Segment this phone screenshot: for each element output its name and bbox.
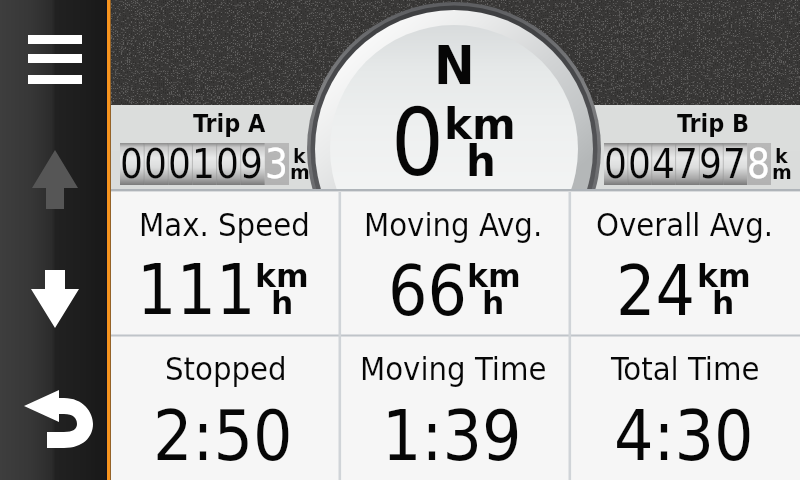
staticText: Moving Time	[360, 350, 547, 388]
staticText: Total Time	[611, 350, 760, 388]
staticText: 7	[723, 141, 746, 188]
staticText: 0	[391, 89, 444, 197]
staticText: 1	[192, 141, 215, 188]
staticText: 0	[628, 141, 651, 188]
button[interactable]: Menu	[20, 25, 90, 91]
staticText: km	[444, 100, 516, 149]
staticText: h	[271, 285, 294, 322]
staticText: 7	[675, 141, 698, 188]
staticText: 111	[137, 250, 256, 330]
staticText: 2:50	[153, 396, 293, 476]
staticText: 0	[144, 141, 167, 188]
staticText: km	[697, 258, 751, 295]
staticText: 3	[265, 141, 288, 188]
staticText: 66	[388, 251, 467, 331]
staticText: Stopped	[165, 350, 287, 388]
staticText: Max. Speed	[139, 206, 310, 244]
staticText: 0	[216, 141, 239, 188]
staticText: h	[482, 285, 505, 322]
staticText: 0	[604, 141, 627, 188]
staticText: k	[775, 145, 788, 167]
staticText: h	[712, 285, 735, 322]
staticText: Overall Avg.	[596, 206, 774, 244]
staticText: N	[434, 34, 475, 97]
staticText: 9	[699, 141, 722, 188]
staticText: 9	[240, 141, 263, 188]
staticText: km	[255, 258, 309, 295]
staticText: m	[290, 161, 310, 183]
button[interactable]: Scroll down	[15, 265, 95, 335]
staticText: k	[293, 145, 306, 167]
staticText: km	[467, 258, 521, 295]
button[interactable]: Scroll up	[15, 145, 95, 215]
staticText: 4:30	[614, 396, 754, 476]
button[interactable]: Back	[18, 386, 98, 454]
staticText: Trip A	[193, 109, 266, 138]
staticText: 0	[120, 141, 143, 188]
staticText: 8	[747, 141, 770, 188]
staticText: 4	[652, 141, 675, 188]
staticText: 1:39	[382, 396, 522, 476]
staticText: h	[466, 137, 496, 186]
staticText: Moving Avg.	[364, 206, 543, 244]
staticText: Trip B	[677, 109, 750, 138]
staticText: 24	[616, 251, 695, 331]
staticText: 0	[168, 141, 191, 188]
staticText: m	[772, 161, 792, 183]
